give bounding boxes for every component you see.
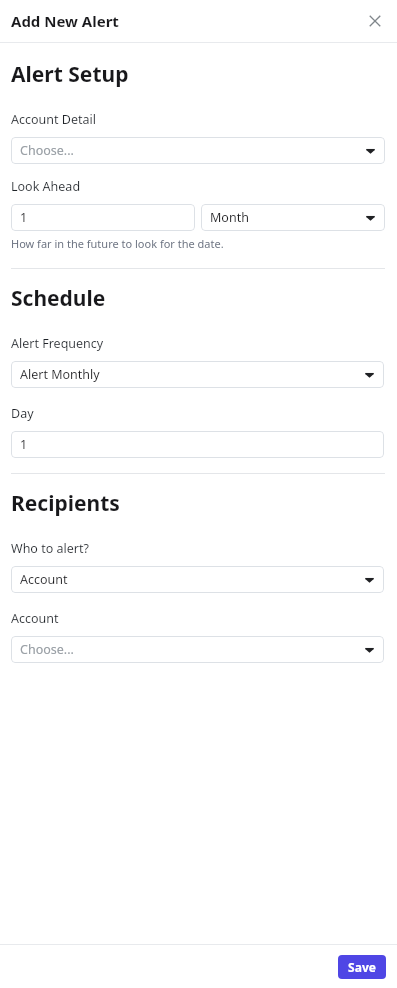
staticText: Save: [348, 959, 376, 975]
staticText: Month: [210, 209, 365, 226]
button[interactable]: Day: [11, 431, 384, 458]
button[interactable]: Alert Frequency: [11, 361, 384, 388]
staticText: Day: [11, 405, 34, 422]
staticText: Account Detail: [11, 111, 96, 128]
staticText: Schedule: [11, 284, 106, 313]
staticText: Alert Frequency: [11, 335, 104, 352]
staticText: How far in the future to look for the da…: [11, 236, 224, 251]
button[interactable]: Who to alert: [11, 566, 384, 593]
staticText: Choose...: [20, 641, 364, 658]
button[interactable]: Look ahead amount: [11, 204, 195, 231]
button[interactable]: Close: [361, 7, 389, 35]
button[interactable]: Account: [11, 636, 384, 663]
button[interactable]: Look ahead unit: [201, 204, 385, 231]
staticText: Look Ahead: [11, 178, 81, 195]
staticText: Choose...: [20, 142, 365, 159]
staticText: 1: [20, 436, 375, 453]
staticText: Who to alert?: [11, 540, 89, 557]
staticText: Account: [11, 610, 59, 627]
staticText: Add New Alert: [11, 11, 119, 31]
staticText: Alert Setup: [11, 60, 129, 89]
staticText: Account: [20, 571, 364, 588]
staticText: Recipients: [11, 489, 120, 518]
button[interactable]: Account Detail: [11, 137, 385, 164]
button[interactable]: Save: [338, 955, 386, 979]
staticText: 1: [20, 209, 186, 226]
staticText: Alert Monthly: [20, 366, 364, 383]
